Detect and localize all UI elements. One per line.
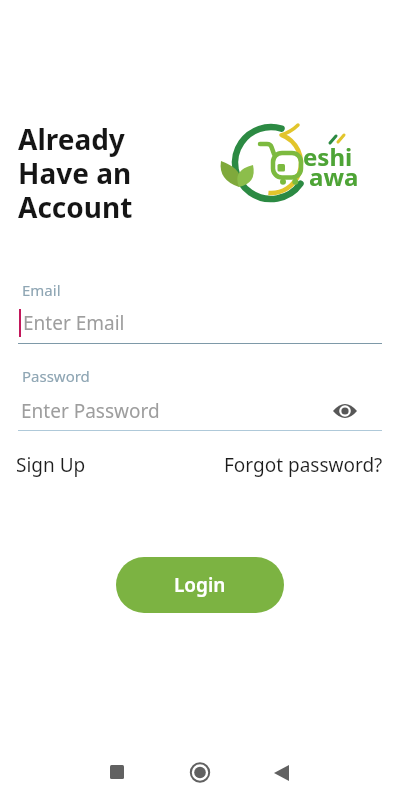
staticText: eshi [303, 140, 353, 173]
staticText: Login [174, 572, 226, 598]
button[interactable] [185, 758, 215, 788]
staticText: awa [309, 160, 359, 193]
staticText: Enter Email [23, 310, 125, 336]
button[interactable]: Enter Email [19, 306, 379, 340]
button[interactable] [102, 758, 132, 788]
button[interactable]: Login [116, 557, 284, 613]
staticText: Password [22, 366, 90, 386]
button[interactable] [330, 398, 360, 424]
staticText: Already Have an Account [18, 120, 133, 226]
button[interactable] [267, 758, 297, 788]
staticText: Enter Password [21, 398, 160, 424]
staticText: Email [22, 280, 61, 300]
button[interactable]: Sign Up [16, 452, 86, 478]
button[interactable]: Forgot password? [224, 452, 383, 478]
button[interactable]: Enter Password [21, 395, 321, 427]
